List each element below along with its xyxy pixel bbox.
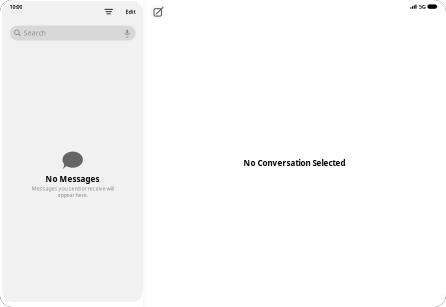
staticText: Messages you send or receive will [31, 185, 113, 192]
staticText: 10:00 [9, 3, 22, 10]
button[interactable]: New Message [148, 3, 166, 21]
staticText: Search [24, 29, 46, 37]
button[interactable]: Filter messages [101, 4, 117, 20]
staticText: Edit [126, 8, 136, 15]
staticText: No Messages [45, 173, 99, 184]
staticText: No Conversation Selected [243, 158, 345, 168]
button[interactable]: Search [10, 25, 135, 40]
staticText: appear here. [57, 191, 87, 199]
staticText: 5G [419, 3, 426, 10]
button[interactable]: Edit [122, 4, 140, 20]
